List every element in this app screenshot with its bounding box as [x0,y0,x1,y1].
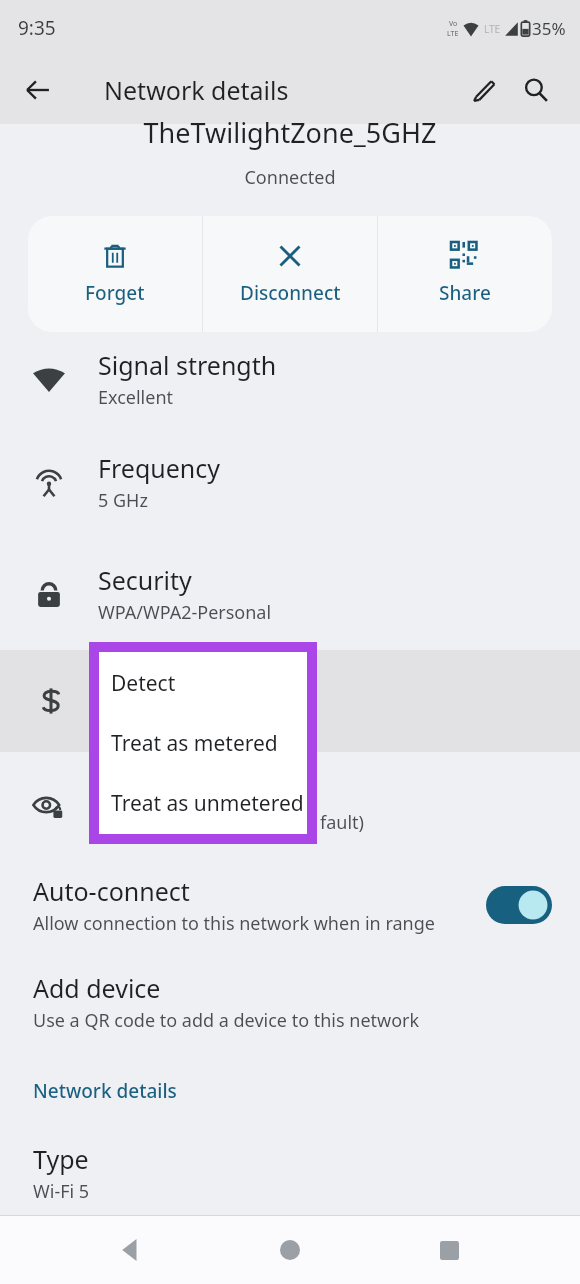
button[interactable]: Signal strength [0,332,580,426]
staticText: Allow connection to this network when in… [33,911,435,936]
button[interactable]: Forget [28,216,202,332]
staticText: 5 GHz [98,488,148,513]
button[interactable]: Security [0,538,580,650]
staticText: Treat as unmetered [111,789,304,818]
button[interactable]: Detect automatically [99,654,307,712]
staticText: Type [33,1142,89,1176]
staticText: WPA/WPA2-Personal [98,600,272,625]
button[interactable]: Back [12,64,64,116]
button[interactable]: Back [103,1222,159,1278]
button[interactable]: Frequency [0,426,580,538]
button[interactable]: Treat as metered [99,714,307,772]
button[interactable]: Treat as unmetered [99,774,307,832]
button[interactable] [0,650,580,752]
button[interactable]: Share [378,216,552,332]
staticText: LTE [484,22,501,36]
staticText: Use a QR code to add a device to this ne… [33,1008,420,1033]
staticText: Network details [104,73,289,107]
button[interactable]: fault) [0,752,580,858]
staticText: Forget [85,280,145,306]
button[interactable]: Recents [421,1222,477,1278]
staticText: Connected [0,165,580,190]
staticText: TheTwilightZone_5GHZ [0,114,580,151]
staticText: Signal strength [98,348,277,382]
staticText: 9:35 [18,15,56,41]
staticText: Frequency [98,451,221,485]
staticText: Security [98,563,192,597]
staticText: 35% [532,17,566,40]
button[interactable]: Detect automatically [99,652,307,834]
button[interactable]: Disconnect [203,216,377,332]
staticText: Treat as metered [111,729,278,758]
staticText: Wi-Fi 5 [33,1179,90,1204]
button[interactable]: Auto-connect [0,858,580,952]
button[interactable]: Add device [0,952,580,1052]
button[interactable]: Edit [458,64,510,116]
button[interactable]: Search [510,64,562,116]
staticText: Share [439,280,491,306]
staticText: LTE [447,29,459,39]
staticText: Excellent [98,385,174,410]
staticText: Detect automatically [111,669,307,698]
staticText: Disconnect [240,280,341,306]
staticText: Add device [33,971,161,1005]
staticText: Network details [33,1078,177,1104]
staticText: Vo [449,19,458,29]
button[interactable]: Home [262,1222,318,1278]
staticText: fault) [320,810,364,835]
staticText: Auto-connect [33,874,190,908]
